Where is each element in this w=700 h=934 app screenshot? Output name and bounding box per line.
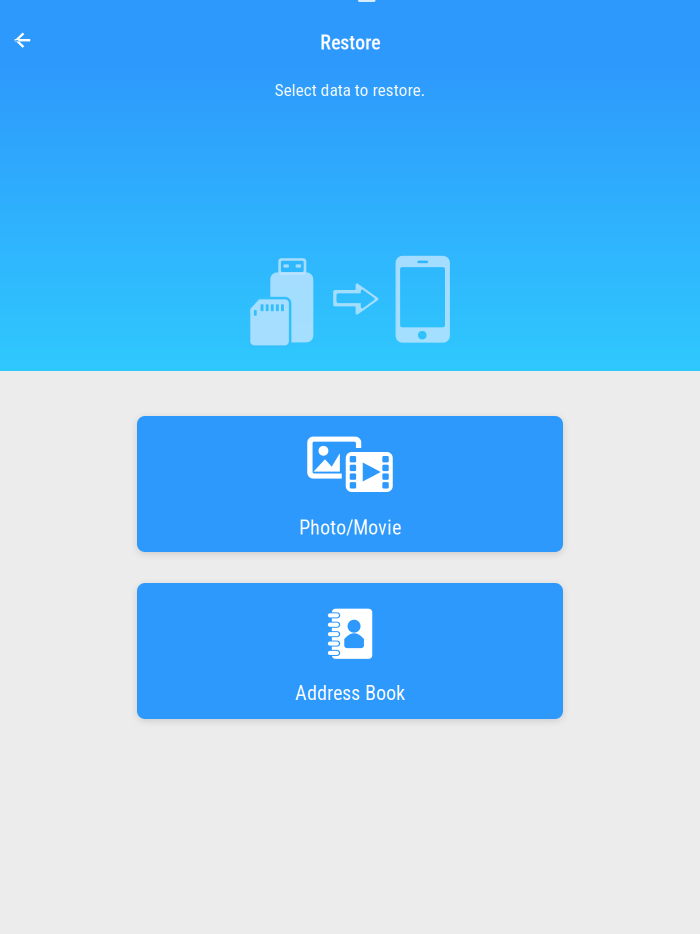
button[interactable]: Back: [2, 20, 42, 60]
staticText: Address Book: [295, 681, 405, 705]
staticText: Photo/Movie: [299, 516, 401, 539]
button[interactable]: Photo/Movie: [137, 416, 563, 552]
staticText: Select data to restore.: [274, 80, 425, 100]
button[interactable]: Address Book: [137, 583, 563, 719]
staticText: Restore: [320, 31, 380, 54]
